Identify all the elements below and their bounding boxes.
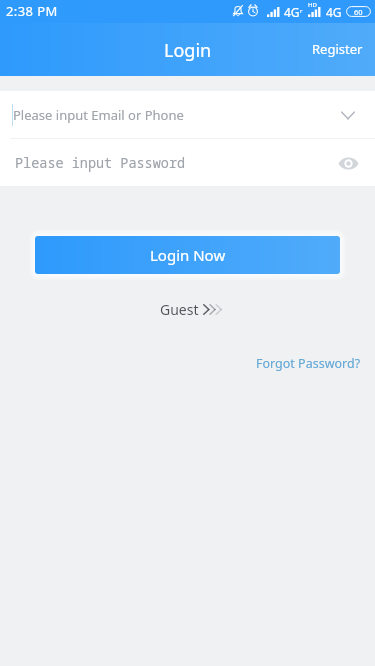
staticText: 4G [326, 4, 342, 20]
button[interactable]: Toggle password visibility [327, 142, 369, 184]
button[interactable]: Please input Password [0, 139, 375, 186]
staticText: 2:38 PM [6, 2, 58, 20]
staticText: Forgot Password? [256, 355, 361, 372]
staticText: r [300, 7, 303, 15]
staticText: HD [308, 1, 317, 9]
staticText: Please input Email or Phone [13, 106, 184, 124]
staticText: Please input Password [15, 154, 186, 172]
button[interactable]: Please input Email or Phone [0, 91, 375, 138]
staticText: Login Now [150, 245, 226, 265]
button[interactable]: Register [298, 33, 375, 65]
staticText: 60 [354, 7, 363, 17]
staticText: Login [164, 38, 212, 63]
staticText: Guest [160, 300, 199, 319]
staticText: Register [312, 40, 363, 58]
staticText: 4G [284, 4, 300, 20]
button[interactable]: Forgot Password? [242, 351, 375, 376]
button[interactable]: Guest [146, 298, 230, 321]
button[interactable]: Login Now [35, 236, 340, 274]
button[interactable]: Show saved accounts [327, 94, 369, 136]
